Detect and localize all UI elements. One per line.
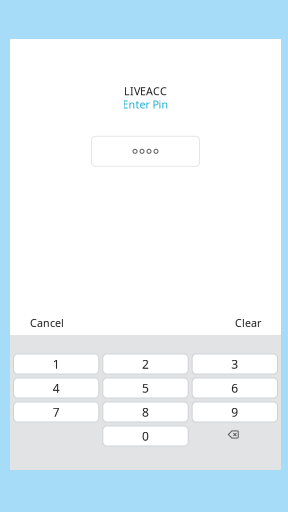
button[interactable]: 6 <box>192 378 277 398</box>
staticText: 7 <box>53 404 60 420</box>
button[interactable]: Clear <box>235 316 261 330</box>
button[interactable]: 5 <box>103 378 188 398</box>
staticText: 1 <box>53 356 60 372</box>
button[interactable]: 4 <box>13 378 99 398</box>
button[interactable]: 1 <box>13 354 99 374</box>
staticText: Clear <box>235 316 261 330</box>
button[interactable]: 7 <box>13 402 99 422</box>
button[interactable]: Delete <box>192 426 277 446</box>
staticText: LIVEACC <box>124 84 167 98</box>
staticText: 3 <box>231 356 238 372</box>
staticText: 8 <box>142 404 149 420</box>
button[interactable]: 9 <box>192 402 277 422</box>
button[interactable]: 3 <box>192 354 277 374</box>
button[interactable]: 2 <box>103 354 188 374</box>
staticText: 4 <box>53 380 60 396</box>
staticText: 5 <box>142 380 149 396</box>
staticText: 0 <box>142 428 149 444</box>
button[interactable]: 8 <box>103 402 188 422</box>
staticText: 9 <box>231 404 238 420</box>
staticText: Enter Pin <box>122 97 168 111</box>
staticText: 6 <box>231 380 238 396</box>
staticText: Cancel <box>30 316 64 330</box>
staticText: 2 <box>142 356 149 372</box>
button[interactable]: Cancel <box>30 316 64 330</box>
button[interactable]: 0 <box>103 426 188 446</box>
